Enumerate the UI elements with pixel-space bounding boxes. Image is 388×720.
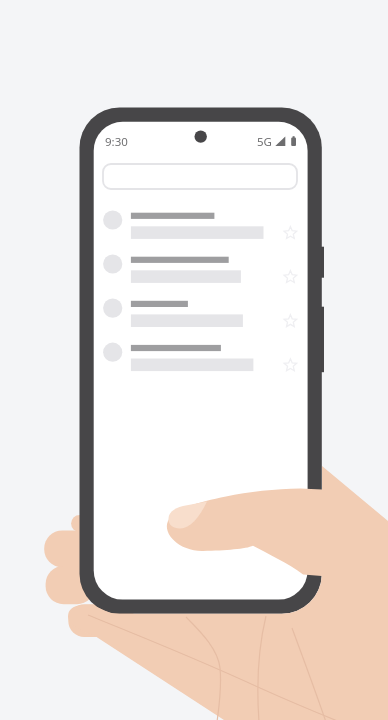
staticText: 9:30 xyxy=(105,134,128,150)
staticText: 5G xyxy=(257,134,272,150)
